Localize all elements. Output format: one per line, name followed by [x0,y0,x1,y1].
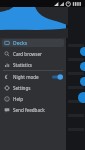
button[interactable]: Decks [2,39,64,47]
staticText: Night mode [13,74,52,80]
staticText: Statistics [13,62,33,68]
staticText: Help [13,96,24,102]
button[interactable]: Help [0,93,66,104]
staticText: Settings [13,85,31,91]
button[interactable]: Add note [80,47,85,56]
staticText: Card browser [13,51,42,57]
button[interactable]: Create deck [80,77,85,86]
staticText: Decks [13,40,28,47]
button[interactable]: Send feedback [0,104,66,115]
button[interactable]: Card browser [0,48,66,59]
button[interactable]: Add [78,92,85,103]
button[interactable]: Night mode toggle [52,74,63,80]
button[interactable]: Get shared decks [80,62,85,71]
button[interactable]: Night mode [0,71,66,82]
staticText: Send feedback [13,107,45,113]
button[interactable]: Settings [0,82,66,93]
button[interactable]: Statistics [0,59,66,70]
